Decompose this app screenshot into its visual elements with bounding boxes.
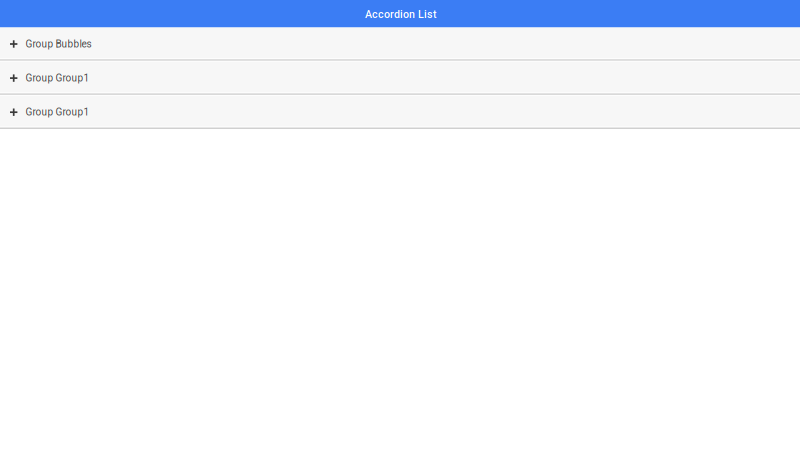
staticText: Group Group1 <box>25 106 89 118</box>
button[interactable]: Group Group1 <box>0 96 800 130</box>
button[interactable]: Group Group1 <box>0 62 800 96</box>
staticText: Group Bubbles <box>25 38 91 50</box>
button[interactable]: Group Bubbles <box>0 27 800 62</box>
staticText: Accordion List <box>365 8 437 21</box>
staticText: Group Group1 <box>25 72 89 84</box>
